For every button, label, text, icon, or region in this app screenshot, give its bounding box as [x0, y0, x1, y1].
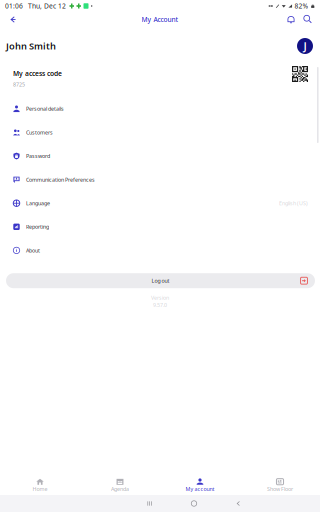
- staticText: My account: [185, 485, 214, 493]
- staticText: J: [303, 39, 306, 53]
- button[interactable]: Profile: [297, 38, 313, 54]
- button[interactable]: Reporting: [0, 215, 320, 239]
- staticText: Home: [32, 485, 47, 493]
- staticText: Language: [26, 200, 50, 207]
- button[interactable]: About: [0, 239, 320, 262]
- button[interactable]: Log out: [0, 262, 320, 288]
- staticText: Customers: [26, 129, 53, 136]
- button[interactable]: Agenda: [80, 471, 160, 494]
- staticText: 82%: [294, 2, 308, 10]
- staticText: English (US): [279, 200, 308, 207]
- button[interactable]: Search: [301, 12, 315, 26]
- staticText: My Account: [141, 15, 178, 24]
- staticText: My access code: [13, 69, 62, 78]
- staticText: Reporting: [26, 223, 49, 230]
- button[interactable]: My account: [160, 471, 240, 494]
- staticText: 9.57.0: [153, 301, 167, 308]
- staticText: John Smith: [6, 40, 56, 52]
- button[interactable]: Show Floor: [240, 471, 320, 494]
- staticText: Communication Preferences: [26, 176, 95, 183]
- staticText: Password: [26, 152, 50, 160]
- button[interactable]: Communication Preferences: [0, 168, 320, 191]
- staticText: 8725: [13, 81, 25, 88]
- button[interactable]: Customers: [0, 121, 320, 144]
- staticText: Personal details: [26, 105, 64, 112]
- staticText: Thu, Dec 12: [28, 2, 66, 10]
- button[interactable]: Back: [5, 11, 21, 27]
- staticText: Show Floor: [267, 485, 293, 493]
- button[interactable]: Home: [0, 471, 80, 494]
- staticText: Log out: [151, 277, 169, 284]
- staticText: Version: [151, 294, 169, 301]
- staticText: Agenda: [111, 485, 129, 493]
- button[interactable]: Personal details: [0, 97, 320, 121]
- button[interactable]: Notifications: [284, 12, 298, 26]
- staticText: 01:06: [5, 2, 23, 10]
- staticText: About: [26, 247, 40, 254]
- button[interactable]: Language: [0, 191, 320, 215]
- button[interactable]: Password: [0, 144, 320, 168]
